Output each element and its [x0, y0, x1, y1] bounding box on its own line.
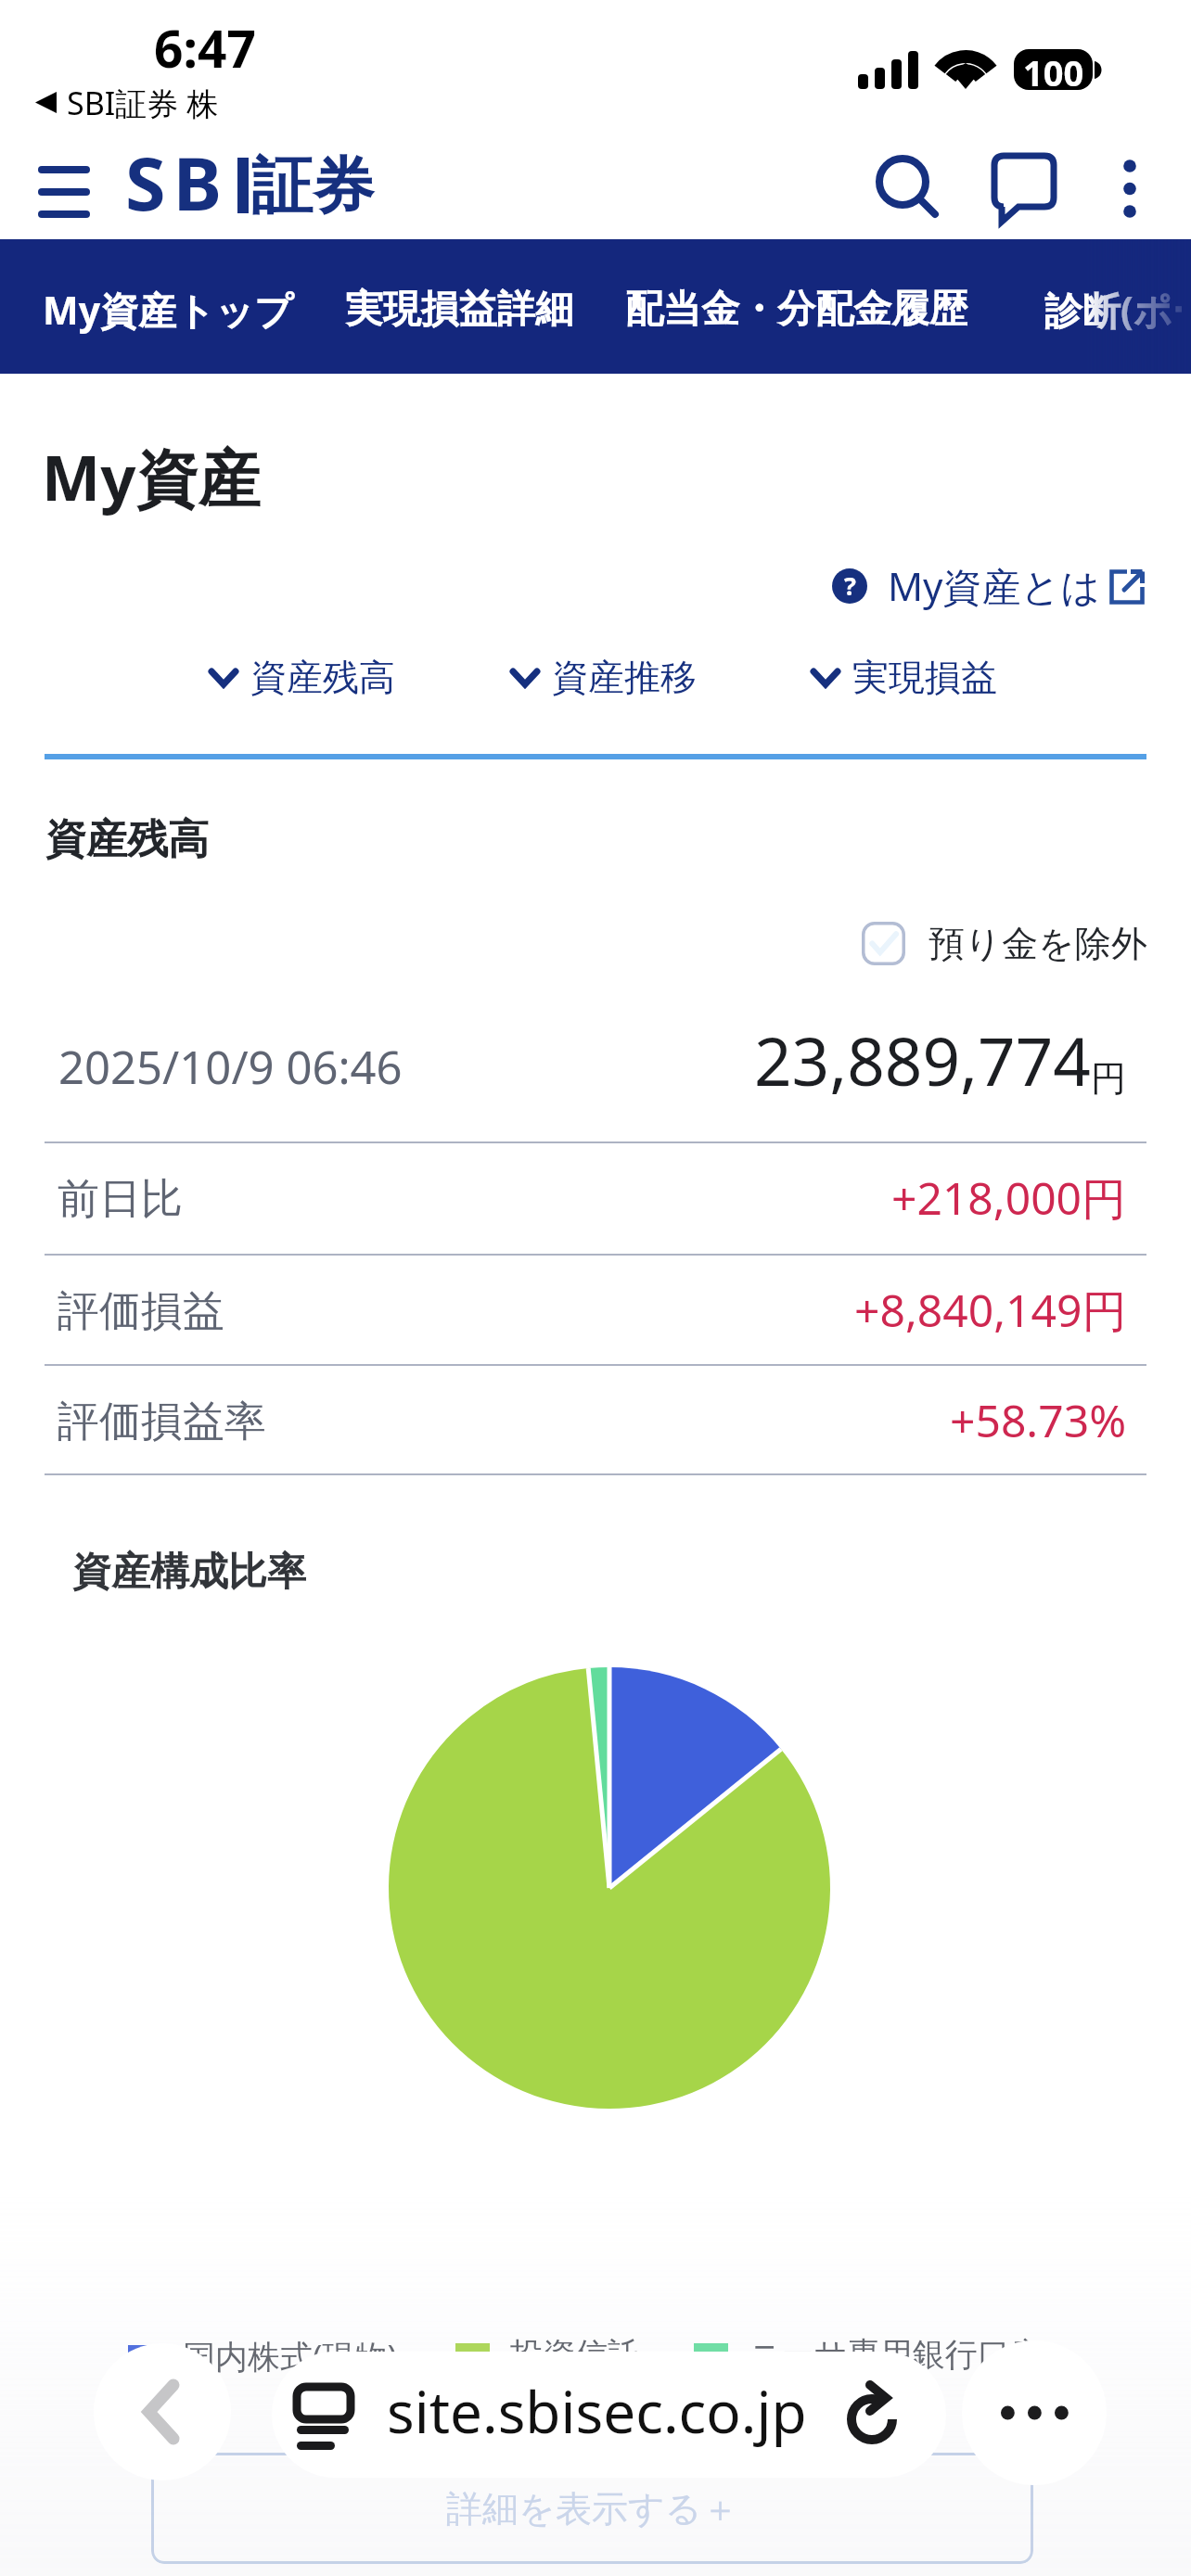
staticText: +58.73% [950, 1390, 1127, 1450]
staticText: 評価損益 [58, 1285, 224, 1338]
button[interactable]: More options [1089, 139, 1171, 228]
staticText: site.sbisec.co.jp [387, 2372, 807, 2450]
button[interactable]: 資産推移 [504, 649, 702, 706]
staticText: 2025/10/9 06:46 [58, 1036, 403, 1098]
staticText: 前日比 [58, 1173, 183, 1226]
staticText: 資産構成比率 [72, 1548, 306, 1597]
staticText: SBI証券 株 [67, 82, 219, 124]
button[interactable]: Chat [972, 139, 1076, 228]
staticText: 投資信託 [510, 2334, 640, 2375]
staticText: SB [125, 133, 230, 233]
button[interactable]: 資産残高 [202, 649, 401, 706]
button[interactable]: My資産トップ [17, 263, 319, 356]
button[interactable]: ? [831, 559, 1145, 612]
staticText: My資産とは [888, 559, 1101, 612]
staticText: +218,000円 [891, 1167, 1127, 1229]
staticText: 詳細を表示する＋ [446, 2486, 738, 2531]
staticText: 証券 [251, 147, 374, 224]
staticText: 評価損益率 [58, 1396, 266, 1448]
staticText: My資産トップ [43, 284, 293, 336]
staticText: 配当金・分配金履歴 [625, 286, 967, 334]
staticText: 100 [1023, 48, 1084, 89]
button[interactable]: More [962, 2340, 1107, 2485]
button[interactable]: 国内株式(現物) [128, 2334, 398, 2378]
staticText: ニーサ専用銀行口座 [749, 2334, 1043, 2375]
button[interactable]: Search [858, 139, 947, 228]
button[interactable]: 詳細を表示する＋ [151, 2453, 1033, 2564]
staticText: 23,889,774 [754, 1015, 1091, 1105]
staticText: +8,840,149円 [854, 1280, 1127, 1341]
staticText: 実現損益詳細 [345, 286, 573, 334]
button[interactable]: 配当金・分配金履歴 [599, 265, 993, 354]
staticText: 実現損益 [852, 655, 997, 700]
staticText: 6:47 [154, 13, 256, 83]
staticText: 円 [1091, 1056, 1126, 1101]
button[interactable]: Back [94, 2343, 231, 2480]
button[interactable]: Reload [828, 2355, 921, 2448]
staticText: 資産推移 [552, 655, 697, 700]
button[interactable]: site.sbisec.co.jp [272, 2352, 946, 2478]
staticText: ? [844, 568, 856, 603]
button[interactable]: ニーサ専用銀行口座 [694, 2334, 1043, 2375]
staticText: 診断(ポートフォリオ) [1044, 284, 1182, 336]
staticText: 資産残高 [45, 814, 209, 865]
staticText: 預り金を除外 [928, 921, 1147, 966]
button[interactable]: 投資信託 [455, 2334, 640, 2375]
staticText: 国内株式(現物) [183, 2334, 398, 2378]
button[interactable]: 実現損益 [804, 649, 1003, 706]
staticText: My資産 [42, 434, 261, 519]
button[interactable]: Menu [19, 147, 109, 236]
button[interactable]: 診断(ポートフォリオ) [993, 263, 1191, 356]
button[interactable]: 預り金を除外 [862, 921, 1147, 966]
button[interactable]: 実現損益詳細 [319, 265, 599, 354]
staticText: 資産残高 [250, 655, 395, 700]
